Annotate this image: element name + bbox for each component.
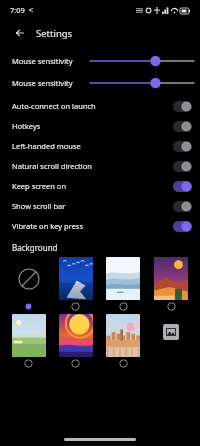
button[interactable] [6,314,51,368]
button[interactable]: Pick image from gallery [163,324,179,340]
button[interactable]: Auto-connect on launch [0,96,200,116]
button[interactable]: Natural scroll direction [0,156,200,176]
staticText: Background [12,242,58,253]
button[interactable]: Mouse sensitivity [0,50,200,72]
button[interactable] [100,314,146,368]
button[interactable]: Mouse sensitivity [0,72,200,94]
staticText: Settings [36,27,73,40]
staticText: Mouse sensitivity [12,78,90,88]
button[interactable] [53,257,98,311]
button[interactable]: Back [10,23,30,43]
button[interactable] [100,257,146,311]
button[interactable] [53,314,98,368]
button[interactable]: Left-handed mouse [0,136,200,156]
button[interactable]: Show scroll bar [0,196,200,216]
staticText: Vibrate on key press [12,221,173,231]
button[interactable]: Hotkeys [0,116,200,136]
button[interactable]: Vibrate on key press [0,216,200,236]
button[interactable]: Keep screen on [0,176,200,196]
staticText: Natural scroll direction [12,161,173,171]
staticText: Left-handed mouse [12,141,173,151]
staticText: 7:09 [10,5,25,15]
staticText: Keep screen on [12,181,173,191]
staticText: Show scroll bar [12,201,173,211]
button[interactable] [6,257,51,311]
staticText: Mouse sensitivity [12,56,90,66]
button[interactable] [148,257,194,311]
staticText: Hotkeys [12,121,173,131]
staticText: Auto-connect on launch [12,101,173,111]
